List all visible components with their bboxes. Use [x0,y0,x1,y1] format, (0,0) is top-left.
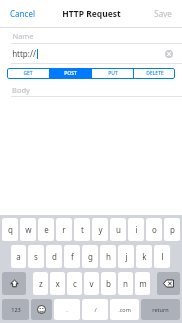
button[interactable]: .com [110,299,139,320]
button[interactable]: Shift [2,272,26,295]
staticText: g [88,251,93,262]
button[interactable]: s [28,245,44,268]
button[interactable]: a [11,245,26,268]
staticText: DELETE [146,70,164,77]
staticText: x [55,278,60,289]
button[interactable]: . [54,299,80,320]
staticText: k [142,251,147,262]
button[interactable]: x [50,272,65,295]
button[interactable]: k [136,245,152,268]
staticText: c [73,278,77,289]
staticText: r [62,224,66,235]
button[interactable]: Emoji [31,299,52,320]
staticText: PUT [108,70,118,77]
staticText: m [139,278,147,289]
button[interactable]: e [38,218,54,241]
button[interactable]: Save [150,5,176,22]
button[interactable]: n [118,272,133,295]
button[interactable]: Body [0,84,182,96]
button[interactable]: Clear text [162,47,175,60]
button[interactable]: f [64,245,80,268]
button[interactable]: j [118,245,134,268]
button[interactable]: y [92,218,108,241]
button[interactable]: / [82,299,108,320]
staticText: z [39,278,43,289]
staticText: l [161,251,164,262]
button[interactable]: m [135,272,150,295]
staticText: o [152,224,157,235]
button[interactable]: c [67,272,82,295]
staticText: w [25,224,32,235]
button[interactable]: Backspace [157,272,180,295]
button[interactable]: u [110,218,126,241]
button[interactable]: b [101,272,116,295]
staticText: i [135,224,138,235]
button[interactable]: t [74,218,90,241]
button[interactable]: Name [0,28,182,43]
button[interactable]: p [164,218,180,241]
button[interactable]: 123 [2,299,29,320]
staticText: GET [23,70,33,77]
button[interactable]: PUT [92,68,133,79]
staticText: y [98,224,103,235]
staticText: 123 [11,306,21,313]
staticText: http:// [12,48,36,59]
staticText: Cancel [10,8,35,19]
staticText: h [106,251,111,262]
button[interactable]: d [46,245,62,268]
button[interactable]: w [20,218,36,241]
staticText: v [89,278,94,289]
staticText: s [34,251,38,262]
button[interactable]: GET [7,68,49,79]
staticText: Save [154,8,172,19]
staticText: Name [12,31,34,41]
button[interactable]: h [100,245,116,268]
staticText: Body [12,85,30,95]
button[interactable]: http:// [0,44,182,63]
button[interactable]: return [141,299,180,320]
staticText: n [123,278,128,289]
staticText: e [44,224,49,235]
button[interactable]: POST [50,68,91,79]
button[interactable]: Cancel [6,5,39,22]
button[interactable]: z [33,272,48,295]
button[interactable]: g [82,245,98,268]
button[interactable]: v [84,272,99,295]
staticText: .com [118,306,131,313]
staticText: . [66,306,68,314]
staticText: return [152,306,169,313]
staticText: d [52,251,57,262]
staticText: j [125,251,128,262]
staticText: POST [64,70,77,77]
button[interactable]: q [2,218,18,241]
staticText: u [116,224,121,235]
button[interactable]: r [56,218,72,241]
staticText: HTTP Request [62,8,121,20]
staticText: b [106,278,111,289]
button[interactable]: l [154,245,170,268]
staticText: t [81,224,84,235]
staticText: / [94,306,97,314]
button[interactable]: i [128,218,144,241]
button[interactable]: DELETE [134,68,175,79]
staticText: a [16,251,21,262]
staticText: f [71,251,74,262]
button[interactable]: o [146,218,162,241]
staticText: p [170,224,175,235]
staticText: q [8,224,13,235]
